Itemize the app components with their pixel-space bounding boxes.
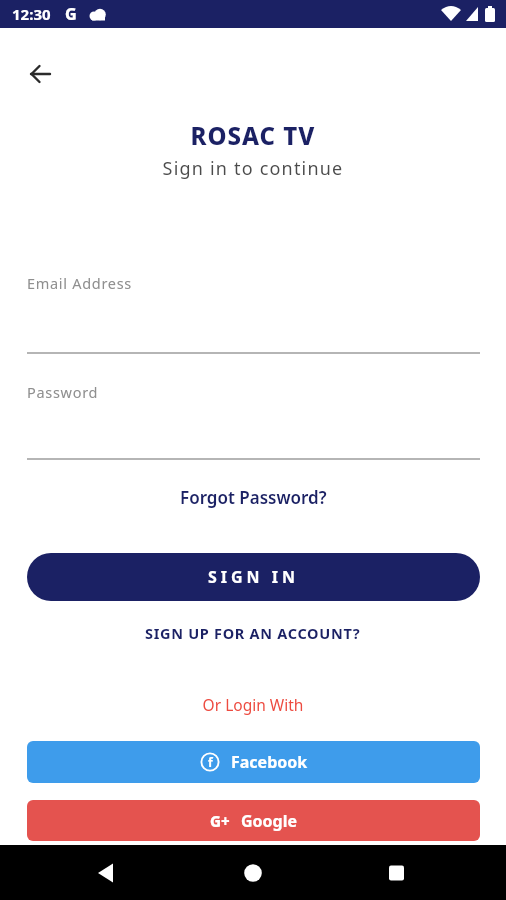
staticText: G+: [210, 811, 230, 831]
staticText: Email Address: [27, 273, 132, 293]
button[interactable]: SIGN UP FOR AN ACCOUNT?: [145, 623, 361, 643]
button[interactable]: G+: [27, 800, 480, 841]
button[interactable]: SIGN IN: [27, 553, 480, 601]
button[interactable]: Forgot Password?: [180, 486, 327, 509]
staticText: 12:30: [12, 4, 51, 24]
staticText: ROSAC TV: [0, 119, 506, 152]
staticText: f: [208, 754, 213, 770]
staticText: Or Login With: [0, 694, 506, 715]
staticText: Google: [241, 810, 298, 832]
staticText: G: [65, 3, 77, 25]
button[interactable]: [22, 56, 58, 92]
staticText: Password: [27, 382, 99, 402]
staticText: Facebook: [231, 751, 308, 773]
staticText: SIGN IN: [208, 566, 300, 588]
button[interactable]: f: [27, 741, 480, 783]
staticText: Sign in to continue: [0, 156, 506, 181]
